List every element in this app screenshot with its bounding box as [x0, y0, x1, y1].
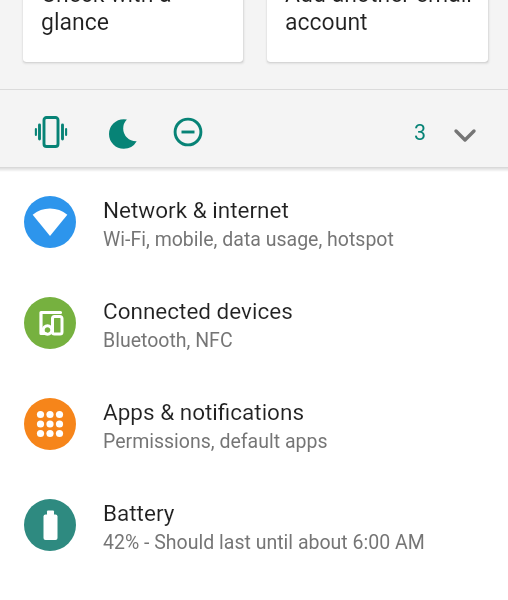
button[interactable] — [109, 119, 139, 149]
staticText: Check with a glance — [41, 0, 172, 36]
button[interactable]: Connected devices — [0, 272, 508, 373]
staticText: Connected devices — [103, 298, 293, 324]
button[interactable] — [173, 117, 203, 147]
staticText: Permissions, default apps — [103, 430, 328, 453]
staticText: Apps & notifications — [103, 399, 304, 425]
staticText: 42% - Should last until about 6:00 AM — [103, 531, 425, 554]
staticText: 3 — [414, 120, 427, 145]
staticText: Battery — [103, 500, 175, 526]
staticText: Bluetooth, NFC — [103, 329, 233, 352]
button[interactable]: Apps & notifications — [0, 373, 508, 474]
staticText: Add another email account — [285, 0, 472, 36]
button[interactable]: Battery — [0, 474, 508, 575]
button[interactable]: Check with a glance — [23, 0, 243, 62]
button[interactable] — [35, 116, 67, 148]
staticText: Network & internet — [103, 197, 289, 223]
staticText: Wi-Fi, mobile, data usage, hotspot — [103, 228, 394, 251]
button[interactable]: Network & internet — [0, 171, 508, 272]
button[interactable]: 3 — [0, 90, 508, 167]
button[interactable]: Add another email account — [267, 0, 488, 62]
button[interactable] — [453, 123, 477, 147]
